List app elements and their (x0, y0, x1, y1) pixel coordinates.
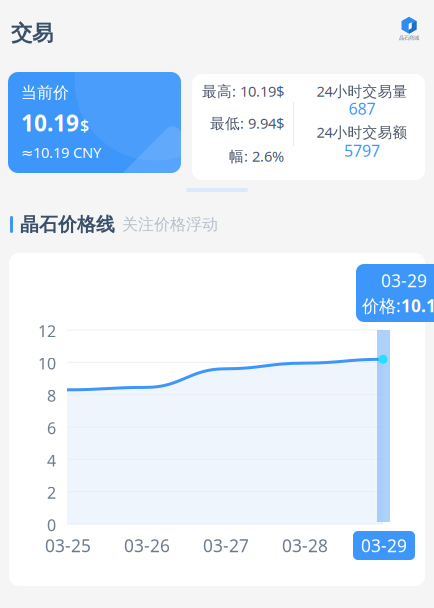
staticText: 03-29 (381, 269, 427, 292)
staticText: 8 (47, 385, 56, 406)
staticText: 幅: 2.6% (229, 146, 284, 166)
staticText: 03-27 (203, 534, 249, 557)
staticText: 晶石价格线 (20, 213, 115, 236)
staticText: 4 (47, 450, 56, 471)
staticText: 最低: 9.94$ (210, 113, 284, 133)
staticText: 关注价格浮动 (122, 215, 218, 234)
staticText: 10.19 (21, 107, 79, 138)
staticText: 当前价 (21, 83, 69, 103)
staticText: 最高: 10.19$ (202, 81, 284, 101)
staticText: 03-28 (282, 534, 328, 557)
staticText: 5797 (344, 140, 380, 161)
staticText: 6 (47, 417, 56, 439)
staticText: 价格: (362, 294, 401, 317)
staticText: ≈10.19 CNY (21, 143, 101, 162)
staticText: 10.19 (401, 294, 434, 317)
staticText: 03-26 (124, 534, 170, 557)
staticText: 0 (47, 514, 56, 536)
button[interactable]: 晶石商城 (392, 13, 426, 45)
staticText: 2 (47, 482, 56, 503)
staticText: 24小时交易额 (316, 122, 407, 142)
staticText: 24小时交易量 (316, 81, 407, 101)
staticText: 687 (348, 98, 375, 119)
staticText: $ (80, 115, 89, 136)
staticText: 03-25 (45, 534, 91, 557)
staticText: 晶石商城 (399, 35, 419, 41)
staticText: 12 (38, 320, 56, 342)
staticText: 03-29 (361, 534, 407, 557)
staticText: 10 (38, 353, 56, 374)
staticText: 交易 (11, 20, 53, 46)
